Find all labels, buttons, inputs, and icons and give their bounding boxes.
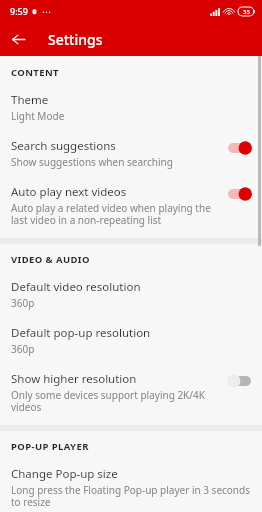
button[interactable]: Theme	[0, 79, 262, 125]
staticText: CONTENT	[11, 66, 59, 79]
button[interactable]: Change Pop-up size	[0, 453, 262, 511]
staticText: Only some devices support playing 2K/4K …	[11, 388, 218, 414]
button[interactable]: On	[224, 185, 254, 203]
staticText: Show higher resolution	[11, 371, 137, 387]
button[interactable]: Search suggestions	[0, 125, 262, 171]
button[interactable]: Default pop-up resolution	[0, 312, 262, 358]
staticText: POP-UP PLAYER	[11, 440, 89, 453]
staticText: Change Pop-up size	[11, 466, 118, 482]
staticText: Default pop-up resolution	[11, 325, 151, 341]
staticText: Search suggestions	[11, 138, 116, 154]
button[interactable]: Auto play next videos	[0, 171, 262, 229]
staticText: Light Mode	[11, 109, 65, 123]
staticText: 9:59	[10, 5, 28, 17]
staticText: Settings	[48, 30, 103, 49]
staticText: VIDEO & AUDIO	[11, 253, 90, 266]
button[interactable]: Default video resolution	[0, 266, 262, 312]
staticText: 35	[243, 8, 250, 16]
staticText: Auto play a related video when playing t…	[11, 201, 218, 227]
staticText: Long press the Floating Pop-up player in…	[11, 483, 254, 509]
staticText: 360p	[11, 296, 35, 310]
staticText: Show suggestions when searching	[11, 155, 173, 169]
button[interactable]: Back	[4, 25, 32, 53]
staticText: Theme	[11, 92, 49, 108]
staticText: Auto play next videos	[11, 184, 127, 200]
button[interactable]: Show higher resolution	[0, 358, 262, 416]
button[interactable]: On	[224, 139, 254, 157]
staticText: 360p	[11, 342, 35, 356]
staticText: Default video resolution	[11, 279, 141, 295]
button[interactable]: Off	[224, 372, 254, 390]
